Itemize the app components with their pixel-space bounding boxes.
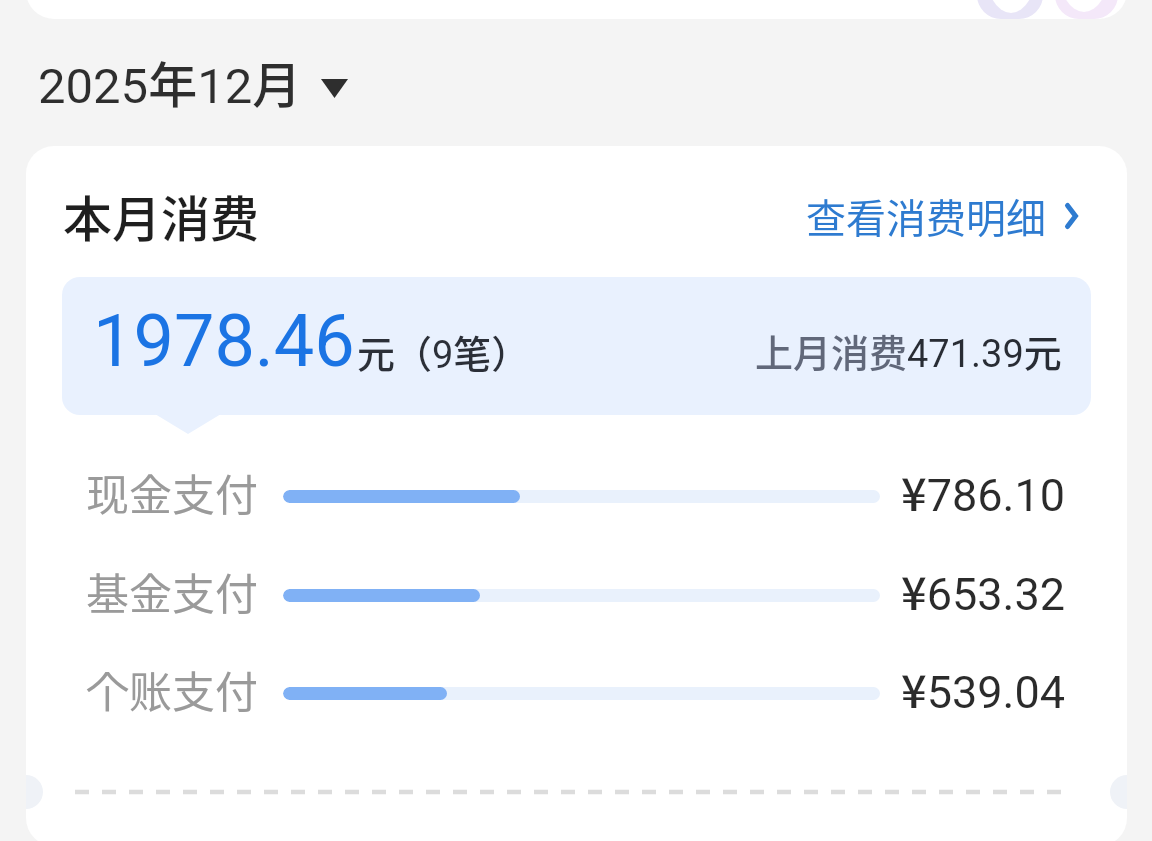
staticText: 个账支付 [86,658,258,720]
staticText: 查看消费明细 [806,187,1046,245]
button[interactable]: 2025年12月 [30,40,360,124]
staticText: ¥653.32 [901,558,1065,623]
button[interactable]: 基金支付 [26,560,1127,630]
staticText: ¥539.04 [901,656,1065,721]
staticText: ¥786.10 [901,459,1065,524]
button[interactable]: 个账支付 [26,658,1127,728]
staticText: （9笔） [394,324,530,379]
staticText: 现金支付 [86,461,258,523]
staticText: 2025年12月 [38,46,302,117]
staticText: 元 [357,324,396,379]
staticText: 1978.46 [93,299,355,383]
staticText: 上月消费471.39元 [755,323,1062,378]
button[interactable]: 查看消费明细 [806,187,1078,245]
button[interactable]: 现金支付 [26,461,1127,531]
staticText: 本月消费 [63,180,260,251]
staticText: 基金支付 [86,560,258,622]
